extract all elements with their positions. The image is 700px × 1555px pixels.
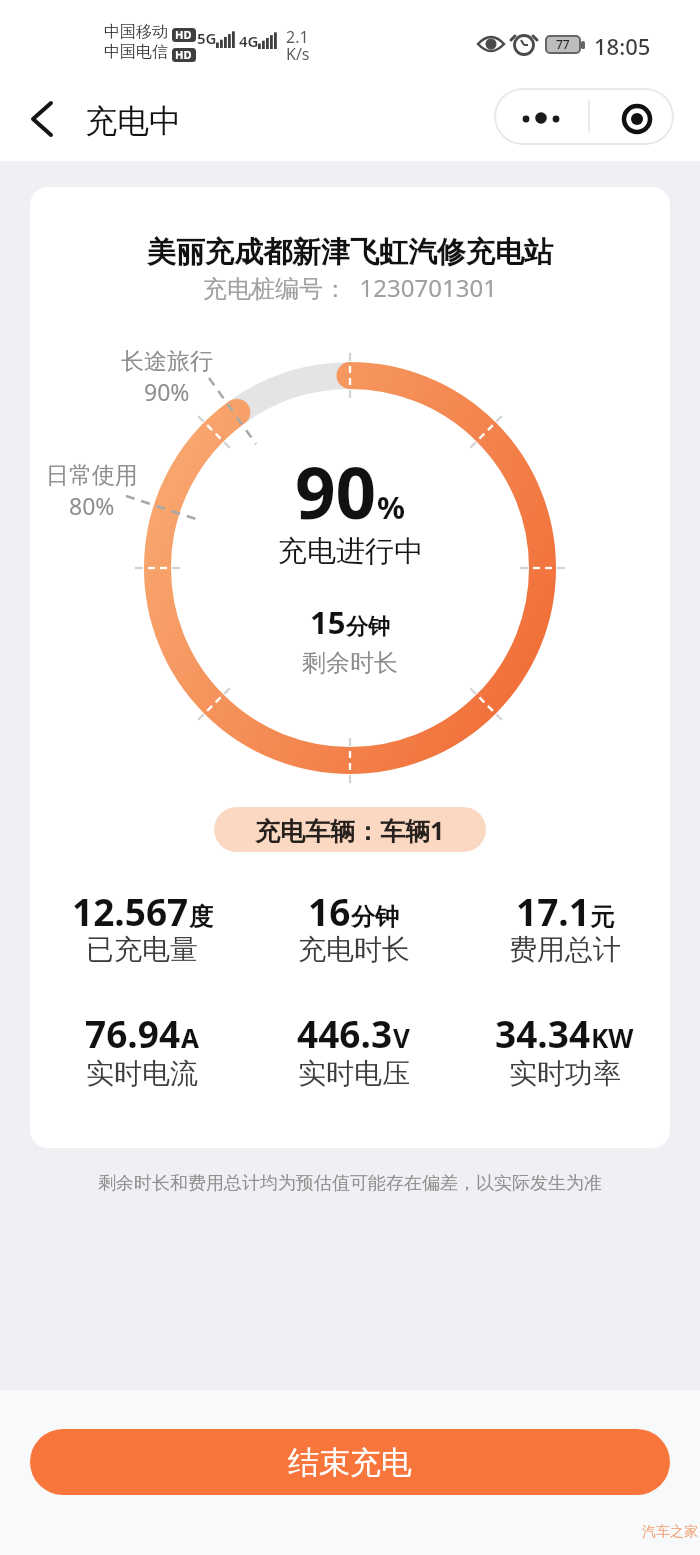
staticText: 80% xyxy=(69,490,115,521)
staticText: A xyxy=(181,1020,199,1055)
staticText: 17.1 xyxy=(516,886,590,936)
staticText: 12.567 xyxy=(72,886,189,936)
staticText: 实时功率 xyxy=(509,1056,621,1091)
staticText: 美丽充成都新津飞虹汽修充电站 xyxy=(147,234,553,271)
staticText: 已充电量 xyxy=(86,932,198,967)
staticText: 446.3 xyxy=(297,1008,393,1058)
staticText: 度 xyxy=(189,902,213,932)
staticText: 76.94 xyxy=(85,1008,181,1058)
button[interactable] xyxy=(494,88,674,145)
staticText: 分钟 xyxy=(346,613,390,641)
staticText: 长途旅行 xyxy=(121,347,213,376)
staticText: 汽车之家 xyxy=(642,1523,698,1541)
staticText: 实时电流 xyxy=(86,1056,198,1091)
staticText: 充电中 xyxy=(85,101,181,141)
staticText: 中国电信 xyxy=(104,42,168,62)
staticText: 15 xyxy=(310,601,346,643)
staticText: 费用总计 xyxy=(509,932,621,967)
staticText: 分钟 xyxy=(351,902,399,932)
staticText: 日常使用 xyxy=(46,461,138,490)
staticText: 剩余时长和费用总计均为预估值可能存在偏差，以实际发生为准 xyxy=(98,1172,602,1195)
staticText: HD xyxy=(175,27,192,42)
staticText: 77 xyxy=(556,36,570,52)
staticText: 充电进行中 xyxy=(278,533,423,570)
staticText: 实时电压 xyxy=(298,1056,410,1091)
staticText: 元 xyxy=(590,902,614,932)
staticText: 34.34 xyxy=(495,1008,591,1058)
staticText: 充电车辆：车辆1 xyxy=(255,813,445,847)
staticText: 5G xyxy=(197,28,217,48)
button[interactable] xyxy=(15,92,70,147)
staticText: KW xyxy=(591,1020,634,1055)
staticText: 充电桩编号： 1230701301 xyxy=(203,271,497,304)
staticText: 2.1 xyxy=(286,26,309,48)
staticText: 中国移动 xyxy=(104,22,168,42)
staticText: 结束充电 xyxy=(288,1443,412,1482)
staticText: 16 xyxy=(308,886,351,936)
staticText: 18:05 xyxy=(594,31,651,61)
staticText: % xyxy=(377,486,405,528)
staticText: 充电时长 xyxy=(298,932,410,967)
staticText: 4G xyxy=(239,31,259,51)
button[interactable]: 充电车辆：车辆1 xyxy=(214,807,486,852)
staticText: 剩余时长 xyxy=(302,648,398,678)
staticText: 90 xyxy=(295,443,377,540)
staticText: HD xyxy=(175,47,192,62)
staticText: 90% xyxy=(144,376,190,407)
button[interactable]: 结束充电 xyxy=(30,1429,670,1495)
staticText: K/s xyxy=(286,43,310,65)
staticText: V xyxy=(393,1020,410,1055)
